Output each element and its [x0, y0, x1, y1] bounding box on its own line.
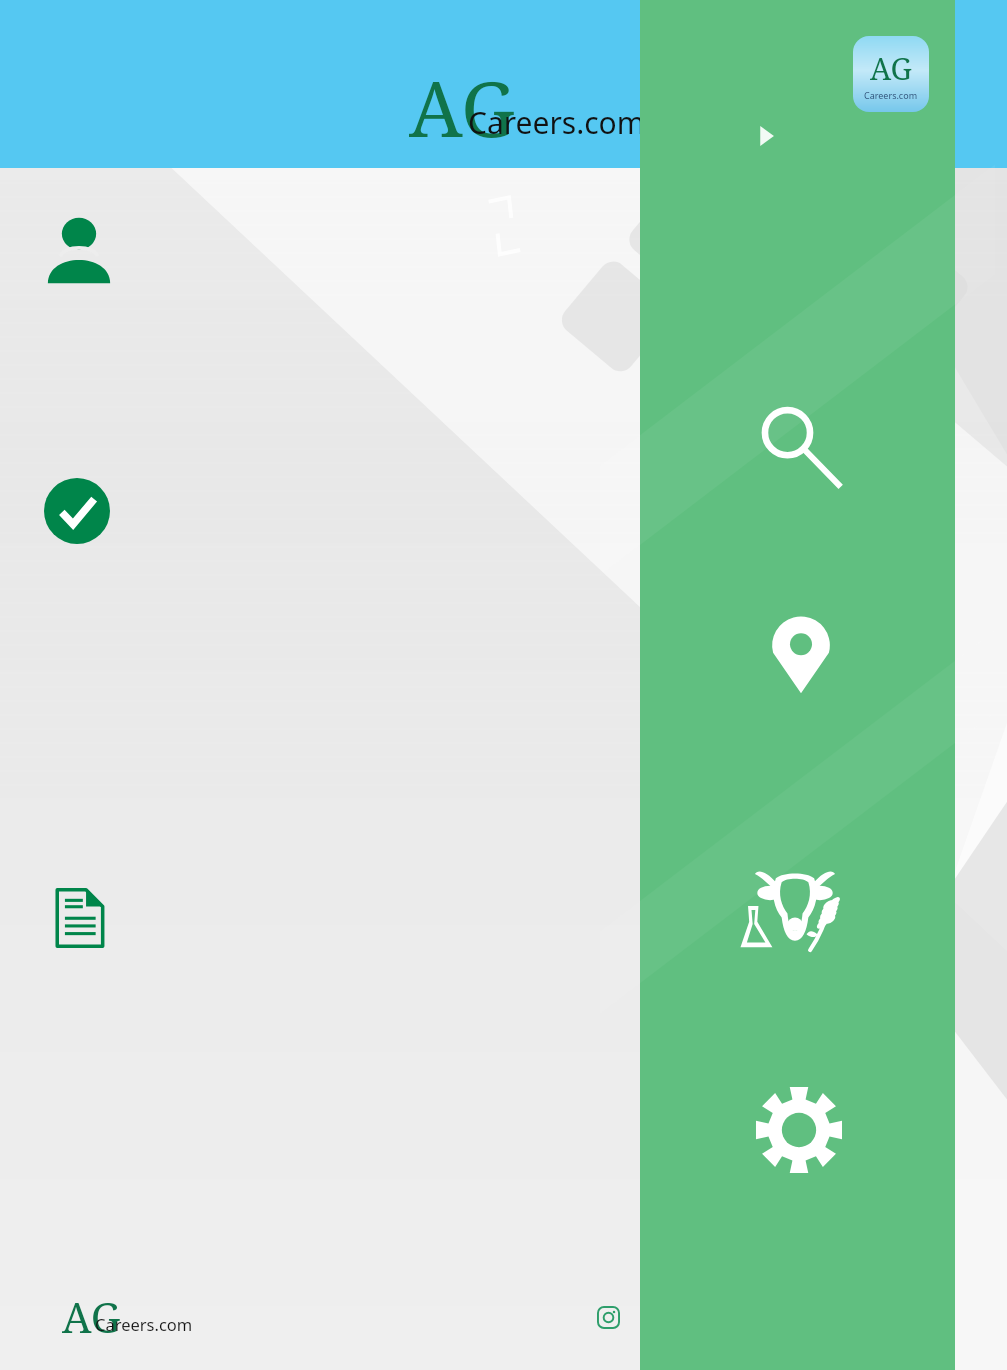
button[interactable]: AgCareers app icon [853, 36, 929, 112]
staticText: AG [409, 56, 516, 154]
staticText: AG [62, 1288, 121, 1344]
staticText: Careers.com [864, 89, 918, 101]
button[interactable]: Search jobs [753, 400, 845, 492]
button[interactable]: AG [60, 1288, 190, 1344]
staticText: Careers.com [95, 1313, 193, 1335]
button[interactable]: AG [405, 56, 625, 154]
button[interactable]: Applications [44, 478, 110, 544]
button[interactable]: Settings [755, 1086, 843, 1174]
button[interactable]: Search by industry [737, 848, 853, 964]
staticText: AG [870, 48, 912, 89]
staticText: Careers.com [468, 102, 645, 143]
button[interactable]: Play [748, 118, 784, 154]
button[interactable]: Resume [47, 886, 111, 950]
button[interactable]: Search by location [763, 618, 839, 694]
button[interactable]: Profile [44, 214, 114, 284]
button[interactable]: Instagram [597, 1306, 620, 1329]
